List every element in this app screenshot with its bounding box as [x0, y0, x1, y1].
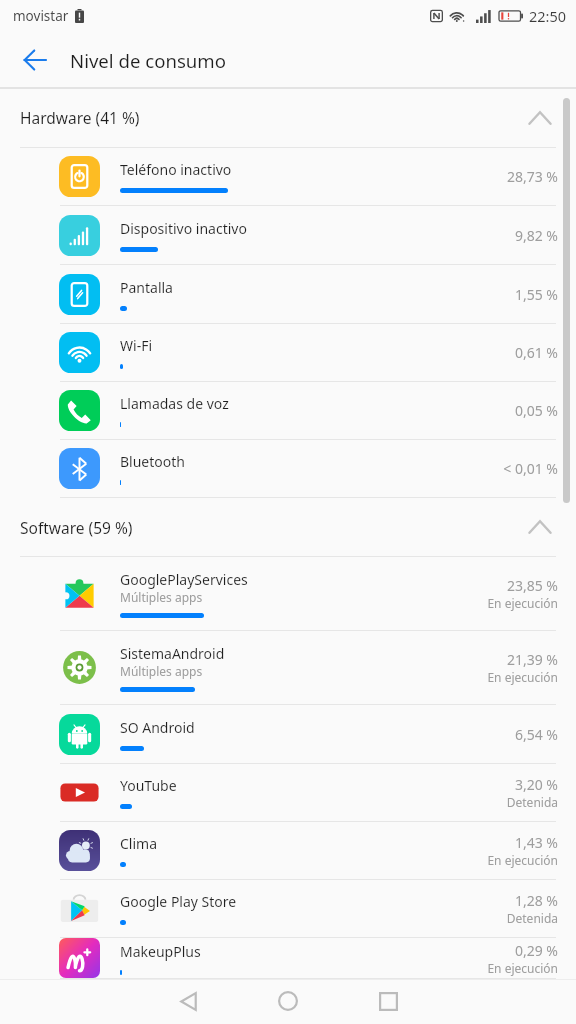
staticText: movistar	[13, 7, 69, 25]
staticText: 1,28 %	[514, 891, 558, 910]
staticText: 23,85 %	[506, 576, 558, 595]
staticText: Wi-Fi	[120, 336, 153, 355]
button[interactable]: Hardware (41 %)	[0, 88, 576, 148]
staticText: 28,73 %	[506, 167, 558, 186]
staticText: 9,82 %	[514, 226, 558, 245]
staticText: Clima	[120, 834, 158, 853]
staticText: Bluetooth	[120, 452, 185, 471]
staticText: En ejecución	[487, 595, 558, 611]
button[interactable]: Llamadas de voz	[0, 382, 576, 440]
staticText: En ejecución	[487, 852, 558, 868]
staticText: 0,05 %	[514, 401, 558, 420]
staticText: Software (59 %)	[20, 517, 133, 538]
staticText: Dispositivo inactivo	[120, 219, 247, 238]
staticText: 6,54 %	[514, 725, 558, 744]
staticText: Nivel de consumo	[70, 48, 226, 73]
button[interactable]: Google Play Store	[0, 880, 576, 938]
button[interactable]: Back	[166, 979, 210, 1023]
staticText: 22:50	[529, 6, 567, 26]
staticText: Teléfono inactivo	[120, 160, 232, 179]
button[interactable]: Wi-Fi	[0, 324, 576, 382]
staticText: 1,55 %	[514, 285, 558, 304]
staticText: Google Play Store	[120, 892, 237, 911]
button[interactable]: Software (59 %)	[0, 498, 576, 557]
staticText: En ejecución	[487, 669, 558, 685]
staticText: En ejecución	[487, 960, 558, 976]
staticText: 0,29 %	[514, 941, 558, 960]
staticText: Múltiples apps	[120, 663, 203, 679]
button[interactable]: Clima	[0, 822, 576, 880]
button[interactable]: SO Android	[0, 705, 576, 764]
button[interactable]: Bluetooth	[0, 440, 576, 498]
staticText: SO Android	[120, 718, 195, 737]
staticText: GooglePlayServices	[120, 570, 248, 589]
button[interactable]: Home	[266, 979, 310, 1023]
staticText: Pantalla	[120, 278, 173, 297]
staticText: 21,39 %	[506, 650, 558, 669]
staticText: 0,61 %	[514, 343, 558, 362]
staticText: Detenida	[506, 794, 558, 810]
staticText: MakeupPlus	[120, 942, 201, 961]
staticText: 3,20 %	[514, 775, 558, 794]
staticText: Llamadas de voz	[120, 394, 229, 413]
button[interactable]: GooglePlayServices	[0, 557, 576, 631]
staticText: SistemaAndroid	[120, 644, 225, 663]
button[interactable]: YouTube	[0, 764, 576, 822]
staticText: Múltiples apps	[120, 589, 203, 605]
button[interactable]: Pantalla	[0, 265, 576, 324]
staticText: < 0,01 %	[503, 459, 558, 478]
staticText: Hardware (41 %)	[20, 107, 140, 128]
staticText: Detenida	[506, 910, 558, 926]
button[interactable]: SistemaAndroid	[0, 631, 576, 705]
staticText: 1,43 %	[514, 833, 558, 852]
staticText: YouTube	[120, 776, 177, 795]
button[interactable]: Teléfono inactivo	[0, 148, 576, 206]
button[interactable]: Back	[11, 36, 59, 84]
button[interactable]: MakeupPlus	[0, 938, 576, 979]
button[interactable]: Dispositivo inactivo	[0, 206, 576, 265]
button[interactable]: Recent apps	[366, 979, 410, 1023]
